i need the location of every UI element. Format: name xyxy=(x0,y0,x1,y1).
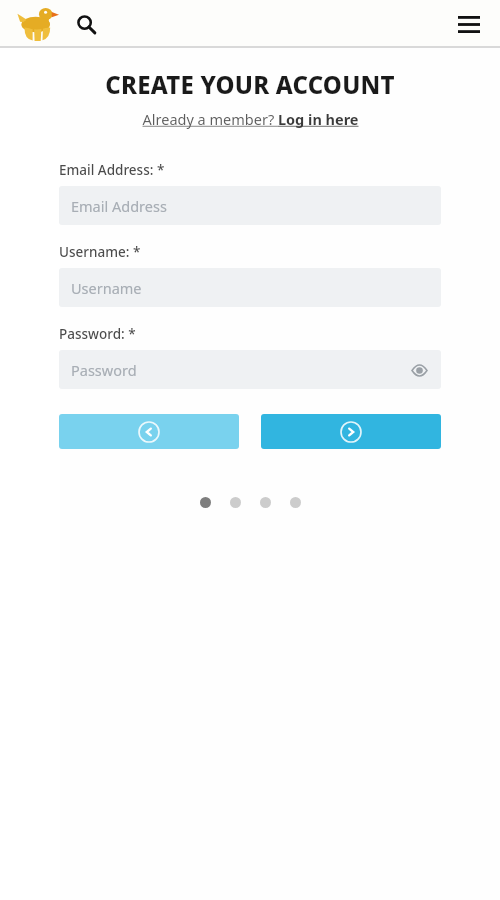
button[interactable]: Step 1 xyxy=(194,491,216,513)
button[interactable]: Password xyxy=(59,350,441,389)
button[interactable]: Previous step xyxy=(59,414,239,449)
staticText: Email Address xyxy=(71,196,167,216)
staticText: Already a member? Log in here xyxy=(142,109,359,129)
button[interactable]: Menu xyxy=(450,5,488,43)
staticText: CREATE YOUR ACCOUNT xyxy=(0,68,500,101)
button[interactable]: Home xyxy=(14,5,60,43)
staticText: Username xyxy=(71,278,142,298)
button[interactable]: Next step xyxy=(261,414,441,449)
staticText: Password xyxy=(71,360,137,380)
button[interactable]: Show password xyxy=(407,358,431,382)
button[interactable]: Already a member? Log in here xyxy=(0,109,500,129)
button[interactable]: Step 3 xyxy=(254,491,276,513)
staticText: Email Address: * xyxy=(59,161,165,179)
staticText: Password: * xyxy=(59,325,136,343)
button[interactable]: Step 2 xyxy=(224,491,246,513)
button[interactable]: Username xyxy=(59,268,441,307)
staticText: Username: * xyxy=(59,243,141,261)
button[interactable]: Search xyxy=(68,6,104,42)
button[interactable]: Email Address xyxy=(59,186,441,225)
button[interactable]: Step 4 xyxy=(284,491,306,513)
